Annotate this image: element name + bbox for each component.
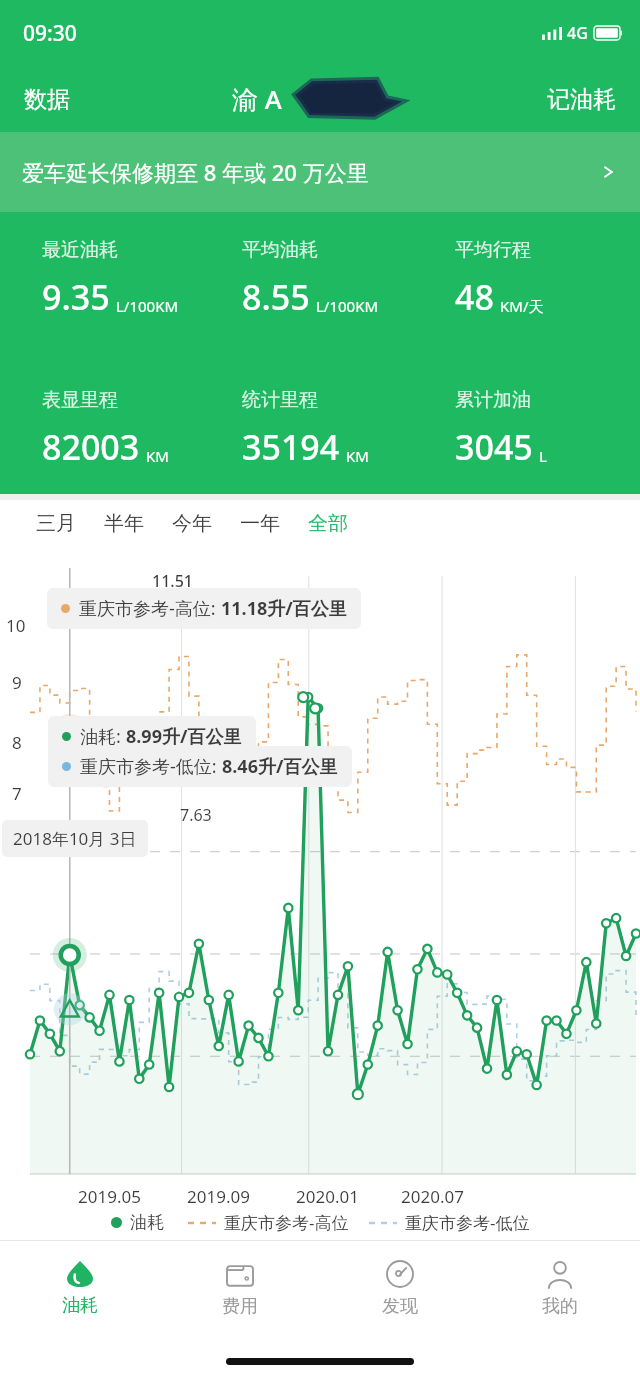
staticText: 8.99升/百公里 [126,724,242,749]
staticText: 11.51 [152,570,193,592]
staticText: 10 [6,614,26,637]
button[interactable]: 平均油耗 [214,238,427,320]
button[interactable]: 我的 [480,1241,640,1337]
staticText: 82003 [42,424,140,470]
button[interactable]: 表显里程 [0,388,214,470]
staticText: 爱车延长保修期至 8 年或 20 万公里 [22,157,598,187]
button[interactable]: 半年 [90,505,158,542]
staticText: 重庆市参考-高位: [79,596,221,621]
staticText: 平均行程 [455,238,531,262]
staticText: 8.55 [242,274,310,320]
staticText: KM [346,446,369,466]
staticText: 重庆市参考-低位 [405,1211,530,1234]
staticText: KM/天 [500,296,544,316]
staticText: 半年 [104,511,144,536]
staticText: 7.63 [180,804,212,826]
staticText: 三月 [36,511,76,536]
staticText: 重庆市参考-高位 [224,1211,349,1234]
button[interactable]: 渝 A [226,72,414,126]
staticText: 油耗: [80,724,126,749]
staticText: 重庆市参考-低位: [80,754,222,779]
staticText: 今年 [172,511,212,536]
staticText: 7 [12,782,22,805]
staticText: 2020.01 [296,1185,359,1208]
button[interactable]: 数据 [0,77,84,122]
staticText: 35194 [242,424,340,470]
staticText: L [539,446,547,466]
button[interactable]: 累计加油 [427,388,640,470]
staticText: 2018年10月 3日 [13,827,137,850]
staticText: 油耗 [130,1212,164,1233]
staticText: KM [146,446,169,466]
staticText: 09:30 [23,19,77,48]
staticText: 渝 A [232,81,282,117]
button[interactable]: 全部 [294,505,362,542]
staticText: 平均油耗 [242,238,318,262]
button[interactable]: 最近油耗 [0,238,214,320]
button[interactable]: 爱车延长保修期至 8 年或 20 万公里 [0,132,640,212]
button[interactable]: 记油耗 [533,77,640,122]
staticText: 累计加油 [455,388,531,412]
staticText: 3045 [455,424,533,470]
staticText: 一年 [240,511,280,536]
button[interactable]: 平均行程 [427,238,640,320]
staticText: 最近油耗 [42,238,118,262]
button[interactable]: 今年 [158,505,226,542]
button[interactable]: 发现 [320,1241,480,1337]
staticText: 48 [455,274,494,320]
staticText: 费用 [222,1295,258,1318]
staticText: L/100KM [116,296,179,316]
staticText: 9.35 [42,274,110,320]
staticText: 2019.09 [187,1185,250,1208]
staticText: 记油耗 [547,85,616,114]
staticText: 全部 [308,511,348,536]
staticText: 8.46升/百公里 [222,754,338,779]
button[interactable]: 三月 [22,505,90,542]
button[interactable]: 油耗 [0,1241,160,1337]
button[interactable]: 一年 [226,505,294,542]
staticText: 11.18升/百公里 [221,596,347,621]
button[interactable]: 费用 [160,1241,320,1337]
staticText: 统计里程 [242,388,318,412]
staticText: 9 [12,671,22,694]
staticText: 数据 [24,85,70,114]
staticText: 表显里程 [42,388,118,412]
staticText: 我的 [542,1295,578,1318]
staticText: 8 [12,731,22,754]
staticText: 发现 [382,1295,418,1318]
staticText: 2019.05 [78,1185,141,1208]
staticText: L/100KM [316,296,379,316]
staticText: 油耗 [62,1294,98,1317]
button[interactable]: 统计里程 [214,388,427,470]
staticText: 2020.07 [401,1185,464,1208]
staticText: 4G [567,22,588,44]
